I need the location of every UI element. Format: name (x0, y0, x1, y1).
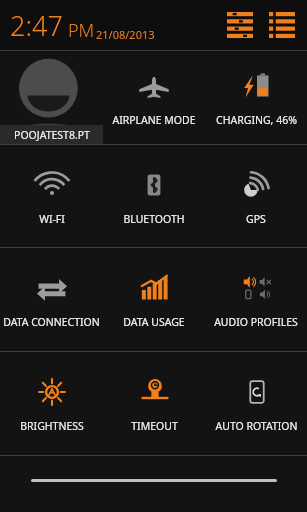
staticText: AUTO ROTATION (215, 419, 298, 433)
button[interactable]: AUDIO PROFILES (205, 248, 307, 351)
button[interactable]: POOJATEST8.PT (0, 51, 103, 144)
staticText: WI-FI (39, 212, 65, 226)
button[interactable]: TIMEOUT (103, 352, 205, 455)
staticText: POOJATEST8.PT (14, 128, 90, 142)
button[interactable]: BRIGHTNESS (0, 352, 103, 455)
button[interactable]: Notifications list (265, 8, 299, 42)
button[interactable]: AIRPLANE MODE (103, 51, 205, 144)
button[interactable]: AUTO ROTATION (205, 352, 307, 455)
staticText: GPS (246, 212, 266, 226)
staticText: DATA CONNECTION (3, 315, 100, 329)
staticText: BRIGHTNESS (20, 419, 84, 433)
staticText: DATA USAGE (123, 315, 185, 329)
staticText: TIMEOUT (131, 419, 178, 433)
button[interactable]: WI-FI (0, 145, 103, 247)
staticText: AIRPLANE MODE (112, 113, 196, 127)
staticText: 21/08/2013 (96, 27, 155, 42)
staticText: CHARGING, 46% (216, 113, 297, 127)
button[interactable]: CHARGING, 46% (205, 51, 307, 144)
button[interactable]: DATA CONNECTION (0, 248, 103, 351)
staticText: BLUETOOTH (123, 212, 185, 226)
button[interactable]: BLUETOOTH (103, 145, 205, 247)
staticText: PM (68, 18, 95, 43)
staticText: AUDIO PROFILES (214, 315, 298, 329)
staticText: 2:47 (10, 7, 63, 44)
button[interactable]: DATA USAGE (103, 248, 205, 351)
button[interactable]: Quick settings sliders (223, 8, 257, 42)
button[interactable]: Drag handle (31, 479, 277, 482)
button[interactable]: GPS (205, 145, 307, 247)
